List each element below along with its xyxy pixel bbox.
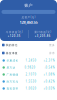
button[interactable]: 广发稳健 xyxy=(0,71,57,78)
staticText: +3,205.86 xyxy=(35,34,51,38)
staticText: 排序 xyxy=(49,51,55,55)
staticText: 128,460.55 xyxy=(19,19,37,25)
staticText: 1.5530 xyxy=(25,80,36,83)
button[interactable]: 我的持仓 xyxy=(0,41,57,49)
button[interactable]: 基金净值 xyxy=(0,49,57,57)
staticText: +1.08% xyxy=(43,73,54,76)
staticText: 基金净值 xyxy=(6,51,18,55)
staticText: 南方宝元 xyxy=(6,80,18,83)
staticText: +2.31% xyxy=(43,59,54,62)
staticText: -0.54% xyxy=(44,66,54,69)
staticText: 1.0020 xyxy=(25,87,36,90)
staticText: 易方达 xyxy=(6,66,15,69)
staticText: 总资产(元) xyxy=(21,15,35,19)
staticText: 1.2450 xyxy=(25,59,36,62)
staticText: +0.42% xyxy=(43,80,54,83)
staticText: +0.03% xyxy=(43,87,54,90)
staticText: 账户 xyxy=(24,3,32,8)
staticText: 广发稳健 xyxy=(6,73,18,76)
button[interactable]: 南方宝元 xyxy=(0,78,57,85)
staticText: 2.1070 xyxy=(25,73,36,76)
staticText: 我的持仓 xyxy=(6,43,18,47)
button[interactable]: 嘉实货币 xyxy=(0,85,57,92)
button[interactable]: 华夏成长 xyxy=(0,57,57,64)
staticText: 0.9820 xyxy=(24,66,35,69)
staticText: 嘉实货币 xyxy=(6,87,18,90)
staticText: 更多 xyxy=(49,43,55,47)
staticText: 今日收益(元) xyxy=(6,30,23,34)
staticText: 累计收益(元) xyxy=(34,30,51,34)
staticText: +120.35 xyxy=(8,34,21,38)
button[interactable]: 易方达 xyxy=(0,64,57,71)
staticText: 华夏成长 xyxy=(6,59,18,62)
